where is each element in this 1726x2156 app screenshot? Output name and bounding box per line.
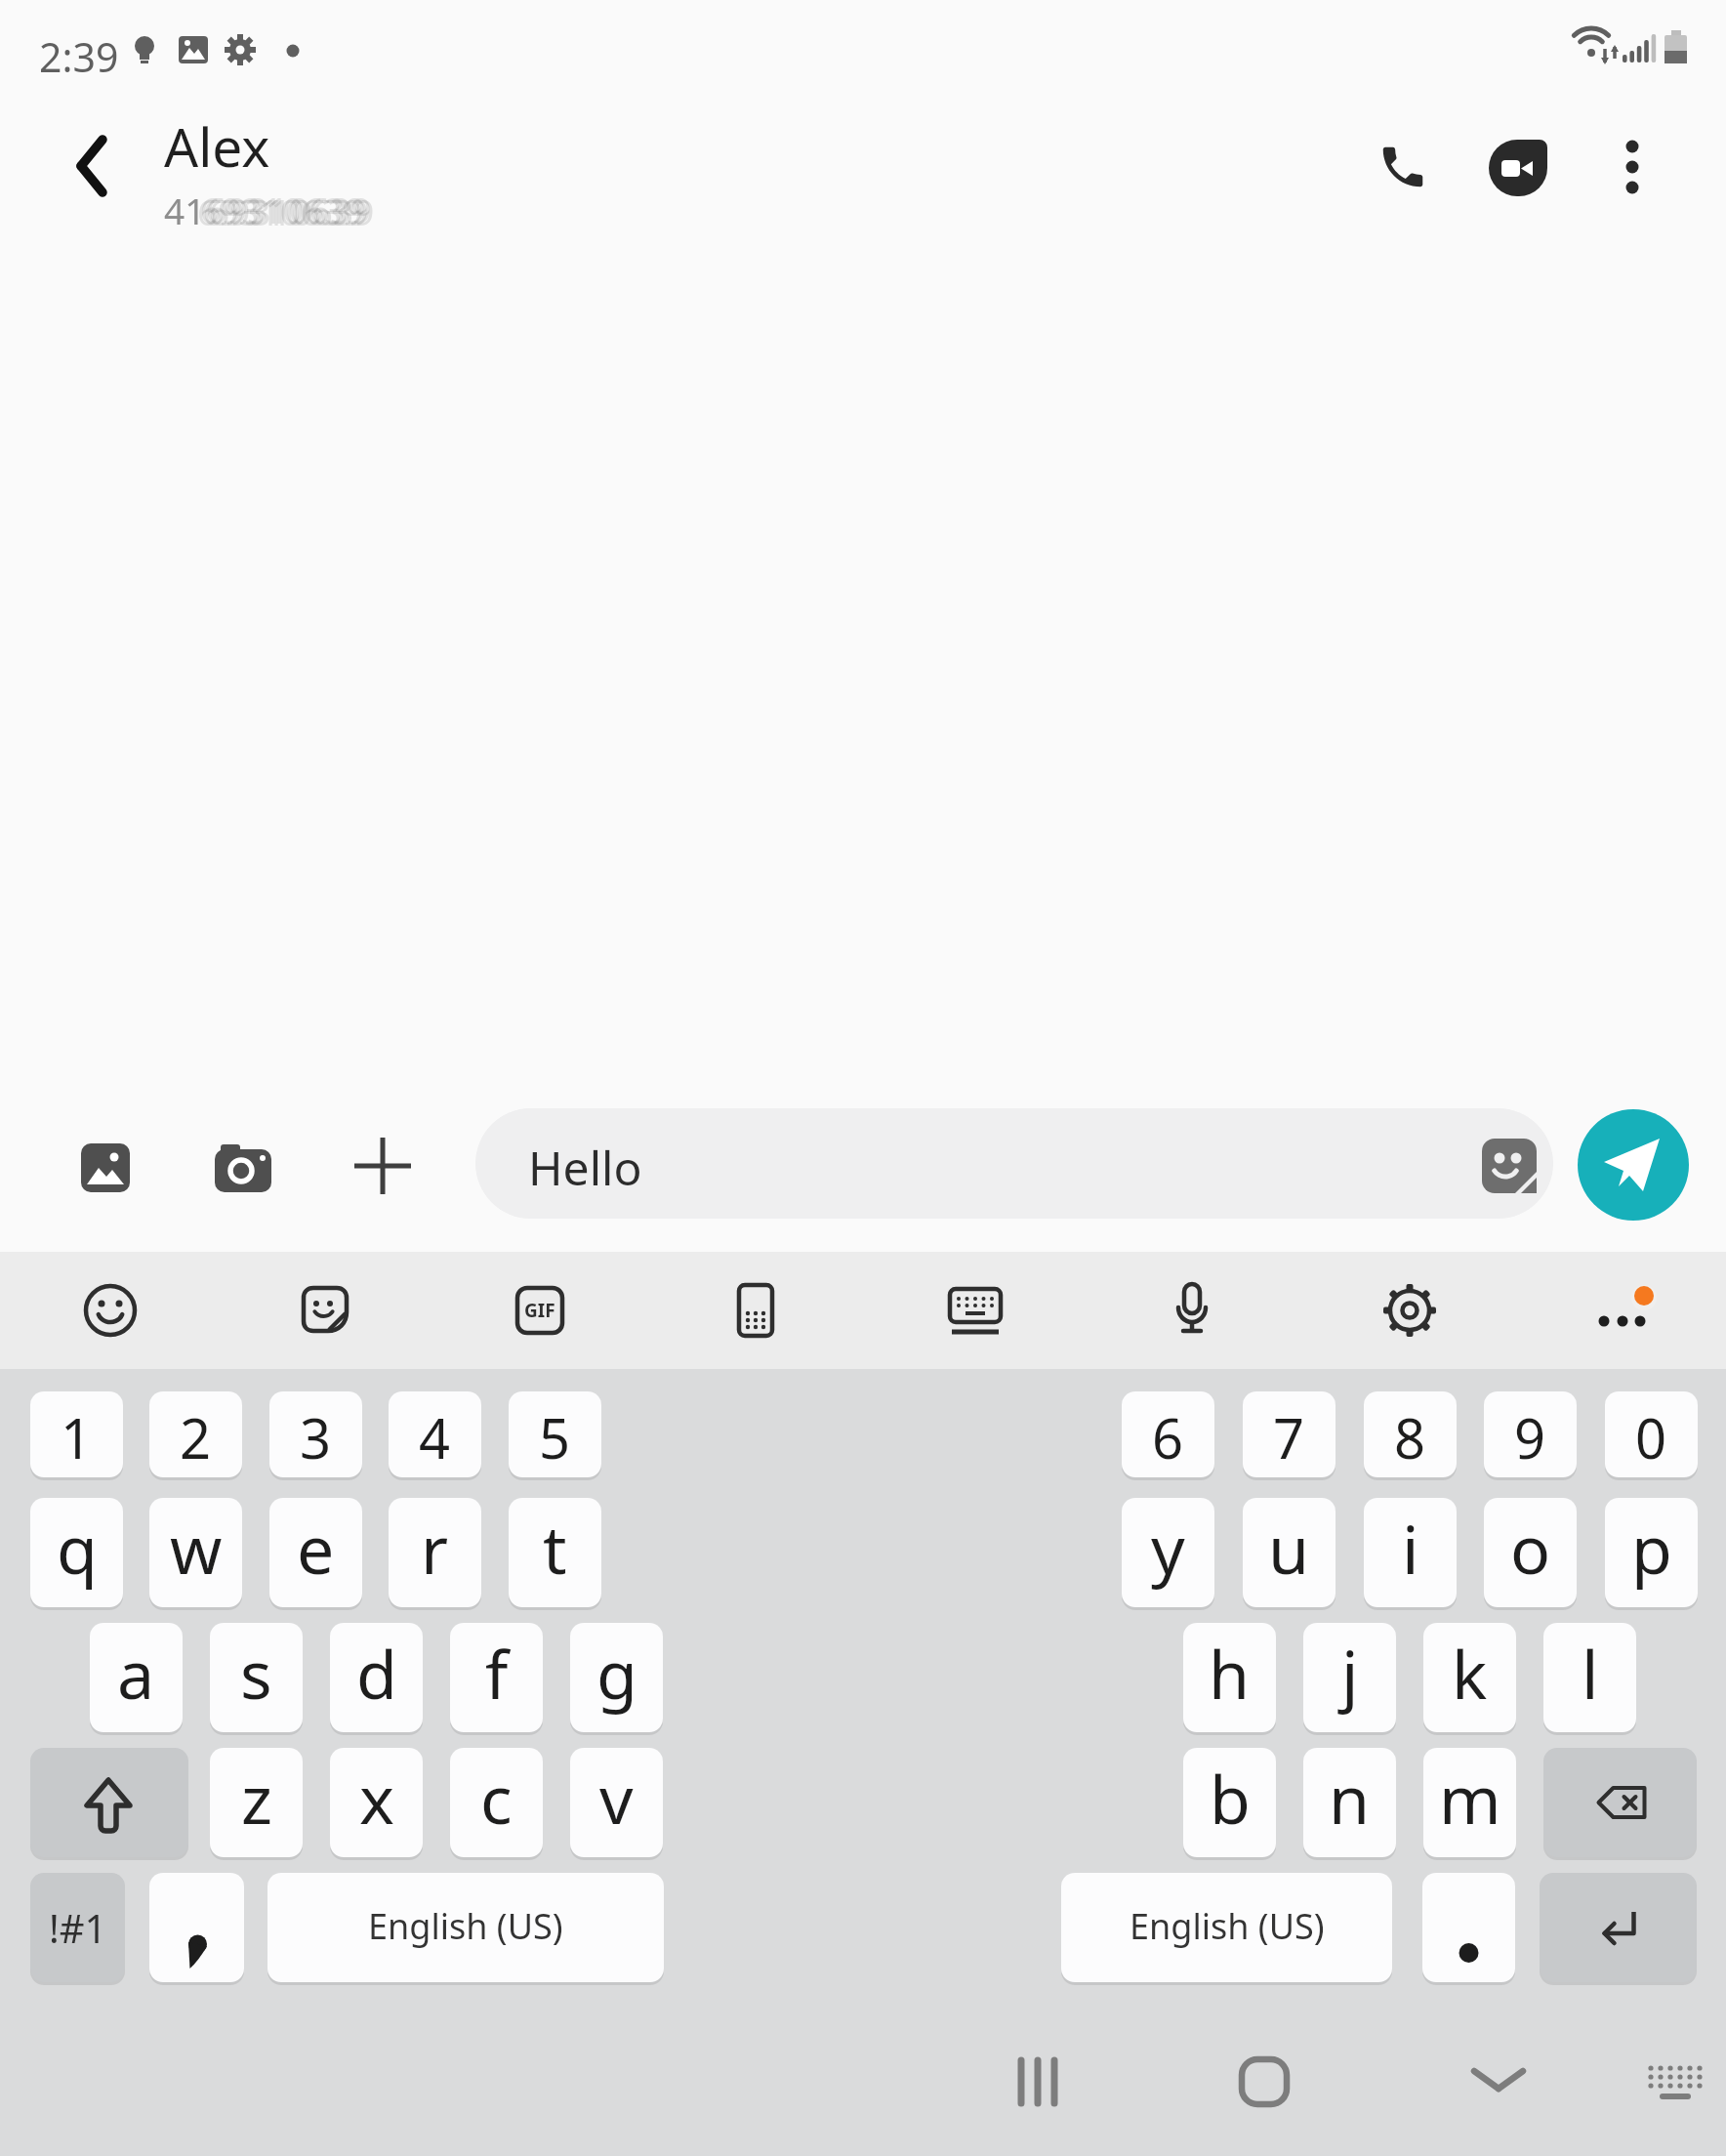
button[interactable]	[1578, 1109, 1689, 1221]
staticText: z	[241, 1753, 272, 1844]
button[interactable]: !#1	[30, 1873, 125, 1982]
button[interactable]: GIF	[511, 1281, 569, 1340]
button[interactable]	[286, 44, 300, 58]
button[interactable]	[81, 1281, 140, 1340]
button[interactable]	[1008, 2056, 1067, 2107]
button[interactable]	[1422, 1873, 1515, 1982]
button[interactable]: i	[1364, 1498, 1457, 1607]
button[interactable]: o	[1484, 1498, 1577, 1607]
button[interactable]	[30, 1748, 188, 1857]
button[interactable]: 6	[1122, 1391, 1214, 1477]
staticText: 5	[539, 1400, 571, 1474]
button[interactable]: f	[450, 1623, 543, 1732]
button[interactable]: l	[1543, 1623, 1636, 1732]
staticText: 69310639	[209, 187, 375, 235]
button[interactable]	[1377, 141, 1429, 193]
staticText: j	[1341, 1628, 1359, 1719]
button[interactable]: z	[210, 1748, 303, 1857]
staticText: 9	[1514, 1400, 1546, 1474]
staticText: 2	[180, 1400, 212, 1474]
button[interactable]: r	[389, 1498, 481, 1607]
button[interactable]: n	[1303, 1748, 1396, 1857]
button[interactable]	[1664, 30, 1688, 63]
button[interactable]	[946, 1281, 1005, 1340]
button[interactable]: p	[1605, 1498, 1698, 1607]
button[interactable]: w	[149, 1498, 242, 1607]
staticText: 3	[300, 1400, 332, 1474]
button[interactable]: g	[570, 1623, 663, 1732]
button[interactable]	[1543, 1748, 1697, 1857]
button[interactable]: v	[570, 1748, 663, 1857]
staticText: e	[297, 1503, 335, 1594]
button[interactable]: b	[1183, 1748, 1276, 1857]
button[interactable]: c	[450, 1748, 543, 1857]
button[interactable]: 8	[1364, 1391, 1457, 1477]
staticText: y	[1151, 1503, 1185, 1594]
button[interactable]	[1573, 23, 1618, 66]
button[interactable]	[79, 1141, 132, 1194]
button[interactable]	[726, 1281, 785, 1340]
button[interactable]: y	[1122, 1498, 1214, 1607]
button[interactable]	[1237, 2054, 1292, 2109]
button[interactable]: 3	[269, 1391, 362, 1477]
button[interactable]	[129, 34, 160, 65]
staticText: 4	[419, 1400, 451, 1474]
button[interactable]: h	[1183, 1623, 1276, 1732]
button[interactable]	[1380, 1281, 1439, 1340]
button[interactable]	[224, 33, 257, 66]
button[interactable]	[1481, 1138, 1538, 1194]
button[interactable]: q	[30, 1498, 123, 1607]
staticText: p	[1631, 1503, 1672, 1594]
staticText: 6	[1152, 1400, 1184, 1474]
button[interactable]	[215, 1141, 271, 1194]
button[interactable]	[72, 135, 115, 197]
staticText: n	[1329, 1753, 1371, 1844]
button[interactable]	[1163, 1281, 1221, 1340]
button[interactable]	[1467, 2059, 1530, 2098]
button[interactable]: 1	[30, 1391, 123, 1477]
button[interactable]	[178, 34, 209, 65]
button[interactable]	[1644, 2058, 1706, 2105]
button[interactable]	[1489, 140, 1547, 196]
staticText: English (US)	[368, 1902, 563, 1950]
button[interactable]	[1621, 124, 1644, 210]
button[interactable]: k	[1423, 1623, 1516, 1732]
staticText: Alex	[164, 109, 270, 183]
button[interactable]: 9	[1484, 1391, 1577, 1477]
button[interactable]: m	[1423, 1748, 1516, 1857]
button[interactable]	[1540, 1873, 1697, 1982]
button[interactable]: 7	[1243, 1391, 1336, 1477]
button[interactable]: x	[330, 1748, 423, 1857]
staticText: 7	[1273, 1400, 1305, 1474]
button[interactable]: e	[269, 1498, 362, 1607]
staticText: i	[1402, 1503, 1419, 1594]
staticText: 69310639	[203, 187, 369, 235]
staticText: v	[599, 1753, 634, 1844]
button[interactable]: j	[1303, 1623, 1396, 1732]
button[interactable]	[1585, 1281, 1660, 1340]
button[interactable]: English (US)	[1061, 1873, 1392, 1982]
staticText: c	[480, 1753, 513, 1844]
staticText: 0	[1635, 1400, 1667, 1474]
staticText: f	[485, 1628, 509, 1719]
button[interactable]: English (US)	[267, 1873, 664, 1982]
button[interactable]: a	[90, 1623, 183, 1732]
button[interactable]: 5	[509, 1391, 601, 1477]
button[interactable]	[296, 1281, 354, 1340]
button[interactable]	[149, 1873, 244, 1982]
staticText: d	[356, 1628, 397, 1719]
button[interactable]	[1623, 31, 1658, 64]
button[interactable]: 0	[1605, 1391, 1698, 1477]
button[interactable]: u	[1243, 1498, 1336, 1607]
button[interactable]: d	[330, 1623, 423, 1732]
staticText: l	[1582, 1628, 1599, 1719]
staticText: g	[596, 1628, 637, 1719]
button[interactable]	[353, 1137, 412, 1195]
button[interactable]	[475, 1108, 1553, 1219]
button[interactable]: t	[509, 1498, 601, 1607]
button[interactable]: s	[210, 1623, 303, 1732]
staticText: 69310639	[197, 187, 363, 235]
button[interactable]: 2	[149, 1391, 242, 1477]
button[interactable]: 4	[389, 1391, 481, 1477]
staticText: x	[359, 1753, 394, 1844]
